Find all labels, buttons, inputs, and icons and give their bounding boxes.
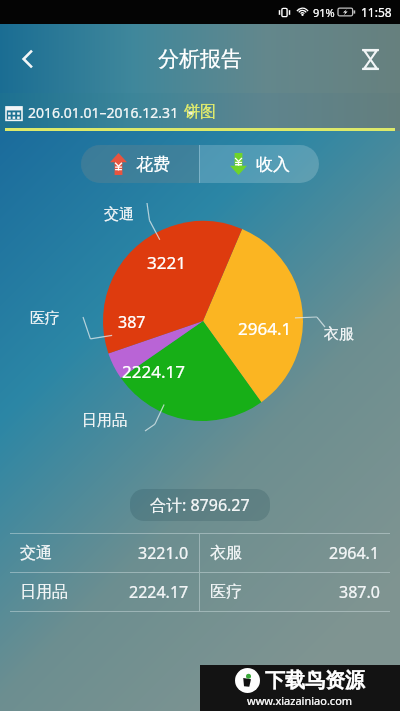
button[interactable]: 交通	[10, 534, 199, 572]
staticText: 花费	[136, 154, 170, 175]
staticText: 日用品	[82, 411, 127, 430]
staticText: 衣服	[210, 543, 242, 563]
staticText: 衣服	[324, 325, 354, 344]
staticText: www.xiazainiao.com	[247, 693, 353, 708]
staticText: 医疗	[210, 582, 242, 602]
button[interactable]: 衣服	[200, 534, 390, 572]
staticText: 387.0	[339, 581, 380, 603]
button[interactable]: 收入	[200, 145, 319, 183]
staticText: 收入	[256, 154, 290, 175]
staticText: 2964.1	[329, 542, 380, 564]
button[interactable]: 饼图	[0, 93, 400, 131]
staticText: 交通	[104, 205, 134, 224]
button[interactable]: Back	[4, 35, 52, 83]
button[interactable]: 医疗	[200, 573, 390, 611]
staticText: 饼图	[184, 102, 216, 122]
staticText: 11:58	[361, 4, 392, 20]
staticText: 交通	[20, 543, 52, 563]
staticText: 91%	[313, 5, 335, 20]
staticText: 分析报告	[158, 46, 242, 72]
staticText: 387	[118, 311, 146, 333]
staticText: 下载鸟资源	[265, 668, 365, 693]
staticText: 日用品	[20, 582, 68, 602]
staticText: 2016.01.01–2016.12.31	[28, 103, 179, 122]
staticText: 2224.17	[129, 581, 189, 603]
staticText: 2224.17	[122, 360, 185, 383]
staticText: 2964.1	[238, 317, 292, 340]
button[interactable]: Filter	[348, 37, 392, 81]
button[interactable]: 2016.01.01–2016.12.31	[6, 103, 196, 122]
staticText: 合计: 8796.27	[150, 494, 250, 516]
staticText: 3221.0	[138, 542, 189, 564]
staticText: 3221	[147, 251, 186, 274]
staticText: 医疗	[30, 309, 60, 328]
button[interactable]: 花费	[81, 145, 199, 183]
button[interactable]: 合计: 8796.27	[130, 489, 270, 521]
button[interactable]: 日用品	[10, 573, 199, 611]
